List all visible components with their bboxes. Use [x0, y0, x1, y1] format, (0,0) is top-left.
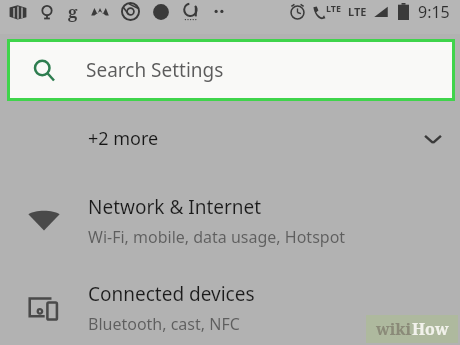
staticText: Search Settings — [86, 57, 224, 83]
button[interactable]: Search — [10, 42, 452, 98]
button[interactable]: Network & Internet — [0, 171, 460, 271]
staticText: Wi-Fi, mobile, data usage, Hotspot — [88, 226, 346, 248]
staticText: LTE — [326, 2, 342, 14]
staticText: Network & Internet — [88, 194, 262, 220]
button[interactable]: +2 more — [0, 106, 460, 171]
staticText: How — [412, 318, 449, 340]
other: Expand — [422, 128, 444, 150]
other: Search — [32, 58, 57, 83]
staticText: +2 more — [88, 126, 159, 151]
staticText: Bluetooth, cast, NFC — [88, 313, 240, 335]
staticText: 9:15 — [418, 1, 450, 23]
button[interactable]: Connected devices — [0, 271, 460, 345]
staticText: g — [68, 0, 78, 23]
staticText: LTE — [348, 4, 367, 19]
staticText: Connected devices — [88, 281, 255, 307]
staticText: wiki — [376, 318, 412, 340]
